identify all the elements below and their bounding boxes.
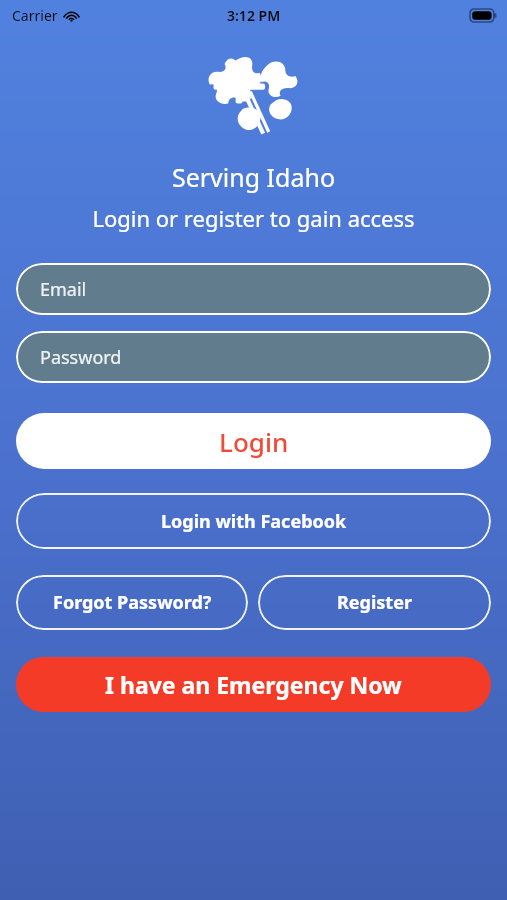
staticText: Register [337, 590, 412, 615]
staticText: Forgot Password? [53, 590, 212, 615]
staticText: Serving Idaho [0, 160, 507, 194]
button[interactable]: Forgot Password? [16, 575, 248, 630]
button[interactable]: Login [16, 413, 491, 469]
staticText: Password [40, 345, 122, 370]
button[interactable]: I have an Emergency Now [16, 657, 491, 712]
staticText: Login with Facebook [161, 509, 347, 534]
staticText: Login [219, 424, 289, 459]
staticText: Email [40, 277, 87, 302]
staticText: Login or register to gain access [0, 203, 507, 233]
button[interactable]: Register [258, 575, 491, 630]
staticText: I have an Emergency Now [105, 669, 402, 700]
button[interactable]: Password [16, 331, 491, 383]
button[interactable]: Email [16, 263, 491, 315]
button[interactable]: Login with Facebook [16, 493, 491, 549]
staticText: 3:12 PM [227, 6, 281, 25]
staticText: Carrier [12, 6, 58, 25]
